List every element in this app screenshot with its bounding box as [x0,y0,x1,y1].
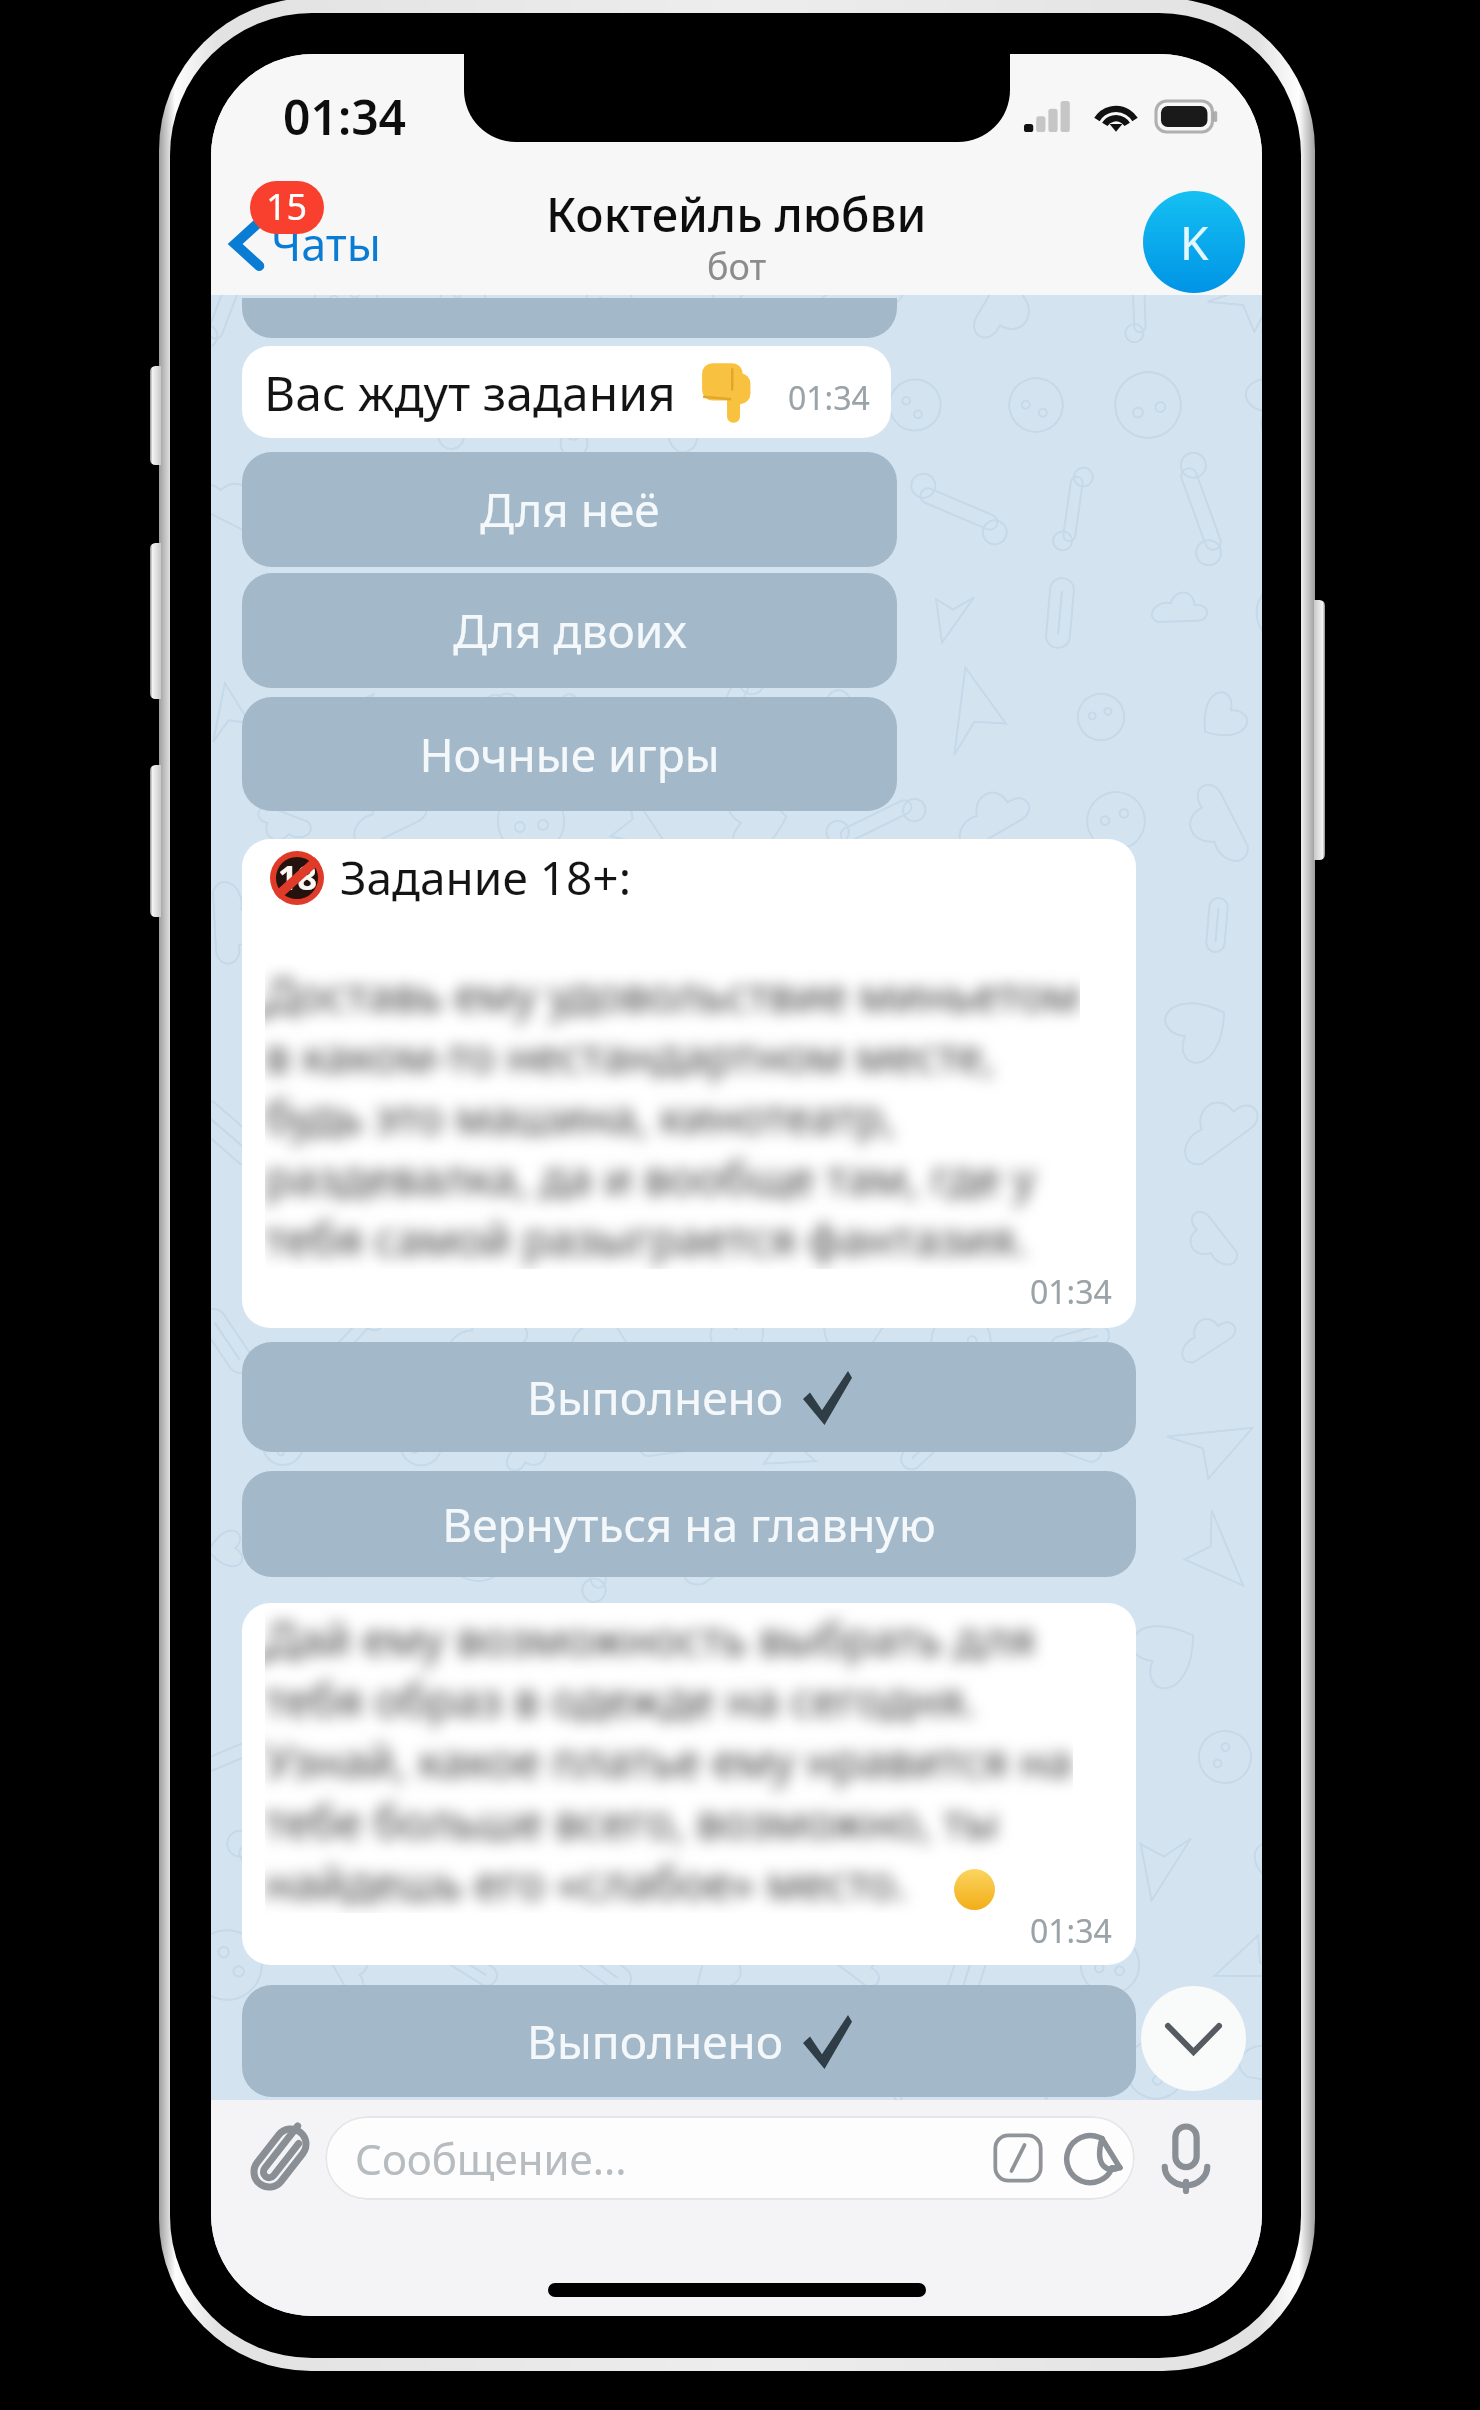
staticText: бот [707,242,767,291]
button[interactable]: Прокрутить вниз [1141,1986,1246,2091]
button[interactable]: Профиль чата [1143,191,1245,293]
button[interactable]: Ночные игры [242,697,897,811]
staticText: 15 [266,182,308,231]
button[interactable]: Для двоих [242,573,897,688]
staticText: Вас ждут задания [264,360,676,425]
button[interactable] [242,298,897,338]
button[interactable]: Записать голосовое сообщение [1145,2117,1227,2199]
staticText: Сообщение... [355,2130,627,2187]
button[interactable]: Прикрепить файл [239,2117,321,2199]
button[interactable]: Сообщение... [325,2116,1135,2200]
staticText: Задание 18+: [340,846,631,909]
button[interactable]: Команды бота [987,2127,1049,2189]
button[interactable]: Выполнено [242,1342,1136,1452]
staticText: K [1180,211,1209,274]
button[interactable]: Выполнено [242,1985,1136,2097]
staticText: Чаты [271,213,381,274]
staticText: Выполнено [527,2010,784,2073]
staticText: 01:34 [1030,1909,1112,1953]
button[interactable]: Чаты [211,199,401,288]
staticText: 01:34 [788,376,870,420]
button[interactable]: Вернуться на главную [242,1471,1136,1577]
staticText: 01:34 [283,84,407,149]
staticText: Выполнено [527,1366,784,1429]
staticText: Для неё [480,478,660,541]
staticText: Доставь ему удовольствие миньетом в како… [265,964,1080,1269]
staticText: 18 [278,854,317,900]
staticText: 01:34 [1030,1270,1112,1314]
staticText: Дай ему возможность выбрать для тебя обр… [265,1608,1073,1913]
staticText: Вернуться на главную [442,1493,936,1556]
button[interactable]: Для неё [242,452,897,567]
button[interactable]: Стикеры [1061,2126,1125,2190]
staticText: Для двоих [453,599,687,662]
staticText: Ночные игры [419,723,720,786]
staticText: Коктейль любви [546,182,927,246]
